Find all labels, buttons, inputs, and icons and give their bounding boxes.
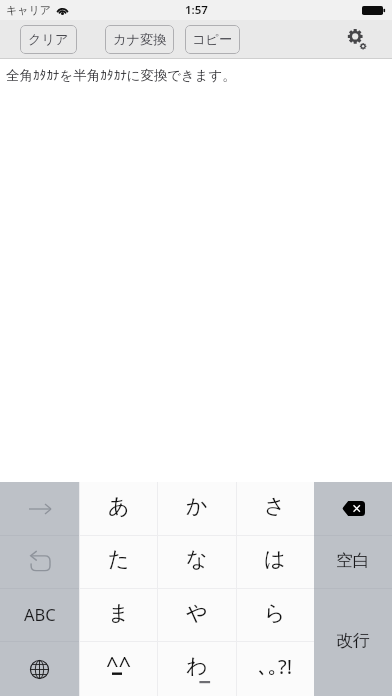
button[interactable]: ABC xyxy=(0,589,79,642)
staticText: な xyxy=(186,546,208,572)
staticText: ABC xyxy=(24,603,56,625)
button[interactable]: ら xyxy=(236,589,314,642)
staticText: 全角ｶﾀｶﾅを半角ｶﾀｶﾅに変換できます。 xyxy=(6,67,236,84)
staticText: クリア xyxy=(28,31,69,48)
button[interactable]: Delete xyxy=(314,482,392,535)
button[interactable]: カナ変換 xyxy=(105,25,174,54)
button[interactable]: コピー xyxy=(185,25,240,54)
button[interactable]: ま xyxy=(79,589,158,642)
button[interactable]: や xyxy=(158,589,236,642)
staticText: わ xyxy=(186,653,208,679)
staticText: か xyxy=(186,493,208,519)
button[interactable]: Globe xyxy=(0,642,79,696)
button[interactable]: な xyxy=(158,535,236,589)
button[interactable]: さ xyxy=(236,482,314,535)
staticText: ^^ xyxy=(106,649,132,679)
button[interactable]: クリア xyxy=(20,25,77,54)
button[interactable]: は xyxy=(236,535,314,589)
button[interactable]: Undo xyxy=(0,535,79,589)
staticText: は xyxy=(264,546,286,572)
staticText: カナ変換 xyxy=(113,31,167,48)
button[interactable]: あ xyxy=(79,482,158,535)
button[interactable]: ^^ xyxy=(79,642,158,696)
button[interactable]: か xyxy=(158,482,236,535)
staticText: ら xyxy=(264,600,286,626)
button[interactable]: 空白 xyxy=(314,535,392,589)
staticText: あ xyxy=(108,493,130,519)
button[interactable]: ､｡?! xyxy=(236,642,314,696)
button[interactable]: わ xyxy=(158,642,236,696)
button[interactable]: Settings xyxy=(346,20,392,59)
button[interactable]: 改行 xyxy=(314,589,392,696)
button[interactable]: Next xyxy=(0,482,79,535)
staticText: 空白 xyxy=(336,550,370,571)
staticText: ､｡?! xyxy=(258,653,293,680)
staticText: コピー xyxy=(192,31,233,48)
staticText: や xyxy=(186,600,208,626)
staticText: キャリア xyxy=(6,3,52,17)
staticText: た xyxy=(108,546,130,572)
staticText: ま xyxy=(108,600,130,626)
staticText: 改行 xyxy=(336,630,370,651)
button[interactable]: た xyxy=(79,535,158,589)
staticText: さ xyxy=(264,493,286,519)
staticText: 1:57 xyxy=(185,2,208,18)
